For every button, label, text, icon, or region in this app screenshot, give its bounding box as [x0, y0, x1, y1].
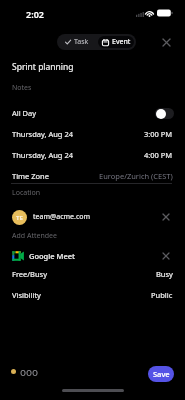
button[interactable]: Google Meet: [12, 247, 173, 265]
button[interactable]: Free/Busy: [0, 264, 185, 284]
button[interactable]: Visibility: [0, 285, 185, 305]
staticText: Event: [112, 37, 131, 47]
button[interactable]: Thursday, Aug 24: [0, 124, 185, 144]
button[interactable]: TE: [12, 208, 173, 226]
staticText: Europe/Zurich (CEST): [99, 171, 173, 181]
staticText: Public: [151, 290, 173, 300]
staticText: Sprint planning: [12, 61, 74, 73]
staticText: 3:00 PM: [144, 129, 173, 139]
staticText: ooo: [20, 365, 39, 377]
button[interactable]: Remove Google Meet: [159, 249, 173, 263]
staticText: Thursday, Aug 24: [12, 150, 74, 160]
staticText: Location: [12, 188, 41, 198]
button[interactable]: All Day: [0, 103, 185, 123]
button[interactable]: Close: [158, 34, 174, 50]
staticText: 2:02: [26, 8, 44, 20]
staticText: Thursday, Aug 24: [12, 129, 74, 139]
button[interactable]: Time Zone: [0, 166, 185, 186]
staticText: Free/Busy: [12, 269, 48, 279]
staticText: Time Zone: [12, 171, 49, 181]
staticText: Busy: [156, 269, 173, 279]
staticText: Visibility: [12, 290, 41, 300]
staticText: Save: [153, 369, 170, 379]
button[interactable]: Remove attendee: [159, 210, 173, 224]
staticText: All Day: [12, 108, 37, 118]
staticText: Task: [74, 37, 89, 47]
button[interactable]: Thursday, Aug 24: [0, 145, 185, 165]
staticText: Google Meet: [29, 251, 75, 261]
button[interactable]: All Day toggle: [155, 108, 174, 119]
staticText: team@acme.com: [33, 212, 91, 222]
staticText: TE: [16, 214, 23, 222]
staticText: 4:00 PM: [144, 150, 173, 160]
button[interactable]: Task: [57, 34, 96, 50]
button[interactable]: Event: [98, 36, 134, 48]
staticText: Notes: [12, 83, 32, 93]
staticText: Add Attendee: [12, 231, 57, 241]
button[interactable]: Save: [148, 366, 174, 382]
